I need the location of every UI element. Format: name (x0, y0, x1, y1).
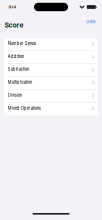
staticText: Done (86, 19, 95, 24)
button[interactable]: Division (4, 90, 98, 102)
staticText: Number Sense (8, 41, 36, 46)
staticText: Addition (8, 54, 24, 59)
button[interactable]: Number Sense (4, 38, 98, 51)
button[interactable]: Done (85, 19, 96, 25)
button[interactable]: Subtraction (4, 64, 98, 77)
staticText: Subtraction (8, 67, 29, 72)
staticText: Score (4, 21, 23, 29)
staticText: Division (8, 93, 22, 98)
button[interactable]: Mixed Operations (4, 102, 98, 115)
staticText: Mixed Operations (8, 106, 41, 111)
staticText: Multiplication (8, 80, 32, 85)
staticText: 9:14 (8, 5, 16, 9)
button[interactable]: Addition (4, 51, 98, 64)
button[interactable]: Multiplication (4, 77, 98, 90)
